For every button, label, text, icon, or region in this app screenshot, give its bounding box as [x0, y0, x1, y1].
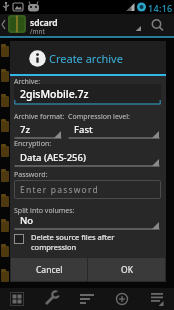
button[interactable]: 2gisMobile.7z [14, 84, 161, 105]
staticText: sdcard [30, 17, 58, 29]
button[interactable]: Cancel [11, 258, 87, 281]
staticText: Compression level: [68, 112, 130, 122]
button[interactable] [37, 288, 67, 310]
button[interactable]: Data (AES-256) [14, 150, 160, 167]
button[interactable] [72, 288, 102, 310]
staticText: Archive: [14, 77, 41, 87]
staticText: No [20, 214, 34, 227]
staticText: Archive format: [14, 112, 65, 122]
staticText: Delete source files after [31, 232, 115, 242]
button[interactable] [2, 288, 32, 310]
button[interactable]: Delete source files after [14, 232, 115, 252]
staticText: /mnt [30, 27, 45, 36]
button[interactable]: Fast [68, 122, 160, 139]
button[interactable] [107, 288, 137, 310]
staticText: 7z [20, 123, 30, 136]
staticText: Password: [14, 170, 48, 180]
button[interactable]: 7z [14, 122, 62, 139]
button[interactable]: No [14, 213, 160, 230]
staticText: Enter password [20, 184, 99, 196]
staticText: Data (AES-256) [20, 151, 86, 164]
staticText: Encryption: [14, 139, 52, 149]
staticText: Create archive [49, 51, 123, 66]
button[interactable] [142, 288, 172, 310]
staticText: 2gisMobile.7z [20, 87, 89, 101]
button[interactable] [148, 16, 168, 35]
staticText: Cancel [36, 264, 63, 276]
staticText: OK [121, 264, 133, 276]
button[interactable]: OK [88, 258, 165, 281]
staticText: 14:16 [148, 2, 173, 14]
staticText: Fast [74, 123, 93, 136]
staticText: compression [31, 242, 77, 252]
staticText: Split into volumes: [14, 206, 75, 216]
button[interactable]: Enter password [14, 180, 161, 199]
